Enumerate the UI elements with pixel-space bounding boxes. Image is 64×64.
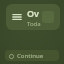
button[interactable]: Continue xyxy=(5,50,59,61)
staticText: Overview xyxy=(27,7,42,19)
button[interactable]: Menu xyxy=(6,4,60,30)
staticText: Today · 4 items xyxy=(27,20,42,28)
staticText: Continue xyxy=(17,52,44,60)
other: Menu xyxy=(12,12,22,22)
